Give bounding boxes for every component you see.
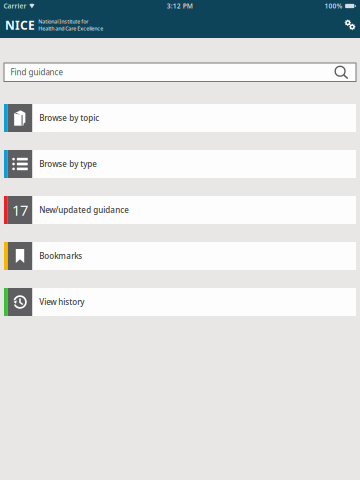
button[interactable]: View history bbox=[4, 288, 356, 316]
button[interactable]: Find guidance bbox=[0, 38, 360, 104]
button[interactable]: Browse by topic bbox=[4, 104, 356, 132]
staticText: Health and Care Excellence bbox=[38, 25, 103, 32]
staticText: NICE bbox=[5, 17, 35, 33]
staticText: Carrier bbox=[4, 2, 27, 10]
staticText: Browse by type bbox=[39, 159, 97, 169]
button[interactable]: Bookmarks bbox=[4, 242, 356, 270]
staticText: Bookmarks bbox=[39, 251, 82, 261]
button[interactable]: 17 bbox=[4, 196, 356, 224]
staticText: Find guidance bbox=[10, 67, 63, 77]
button[interactable]: Settings bbox=[342, 14, 358, 36]
staticText: View history bbox=[39, 297, 84, 307]
staticText: National Institute for bbox=[38, 18, 88, 25]
staticText: 100% bbox=[325, 2, 343, 10]
button[interactable]: Browse by type bbox=[4, 150, 356, 178]
staticText: 17 bbox=[12, 200, 28, 220]
staticText: Browse by topic bbox=[39, 113, 99, 123]
staticText: 3:12 PM bbox=[167, 2, 193, 10]
staticText: New/updated guidance bbox=[39, 205, 129, 215]
